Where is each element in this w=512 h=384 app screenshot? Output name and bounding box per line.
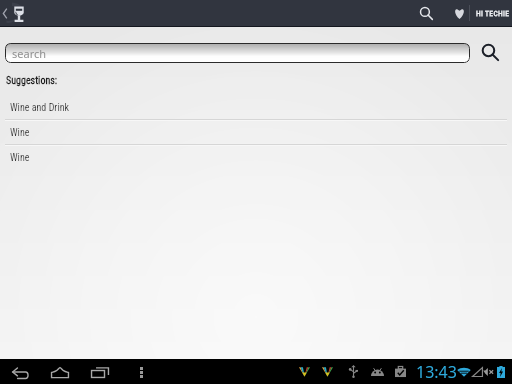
button[interactable]: More options — [131, 362, 151, 382]
button[interactable]: Search — [478, 42, 502, 63]
button[interactable]: Search — [413, 0, 439, 26]
button[interactable]: Back — [8, 359, 33, 384]
button[interactable]: Wine — [0, 121, 512, 146]
staticText: Wine — [10, 152, 30, 164]
button[interactable]: Wine and Drink — [0, 96, 512, 121]
staticText: Suggestions: — [6, 75, 58, 87]
button[interactable]: Back to app — [0, 0, 34, 26]
button[interactable]: HI TECHIE — [471, 0, 512, 26]
staticText: search — [12, 46, 47, 61]
button[interactable]: Favorites — [447, 1, 471, 25]
button[interactable]: Wine — [0, 146, 512, 171]
staticText: 13:43 — [416, 361, 457, 383]
staticText: Wine — [10, 127, 30, 139]
button[interactable]: Recent apps — [87, 359, 112, 384]
staticText: Wine and Drink — [10, 102, 70, 114]
button[interactable]: search — [5, 43, 470, 63]
button[interactable]: Home — [47, 359, 72, 384]
staticText: HI TECHIE — [476, 9, 510, 18]
